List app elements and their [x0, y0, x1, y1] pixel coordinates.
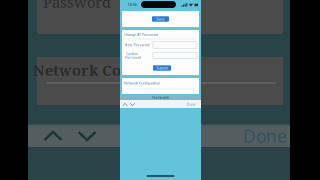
- staticText: Password: [125, 55, 141, 60]
- button[interactable]: Next field: [130, 103, 135, 106]
- staticText: Done: [186, 102, 195, 107]
- button[interactable]: Submit: [153, 65, 171, 71]
- staticText: Confirm: [126, 52, 138, 56]
- staticText: Password: [43, 0, 111, 12]
- staticText: Done: [243, 124, 287, 148]
- staticText: 12:34: [127, 2, 136, 7]
- staticText: Passwords: [151, 95, 169, 100]
- button[interactable]: Done: [186, 102, 195, 107]
- staticText: Submit: [156, 65, 167, 70]
- staticText: New Password: [124, 43, 149, 47]
- button[interactable]: Save: [152, 16, 169, 22]
- staticText: Save: [156, 16, 164, 21]
- staticText: Change AT Password: [124, 32, 158, 37]
- staticText: Network Con: [33, 60, 131, 80]
- button[interactable]: Previous field: [122, 103, 128, 106]
- staticText: Network Configuration: [124, 80, 160, 85]
